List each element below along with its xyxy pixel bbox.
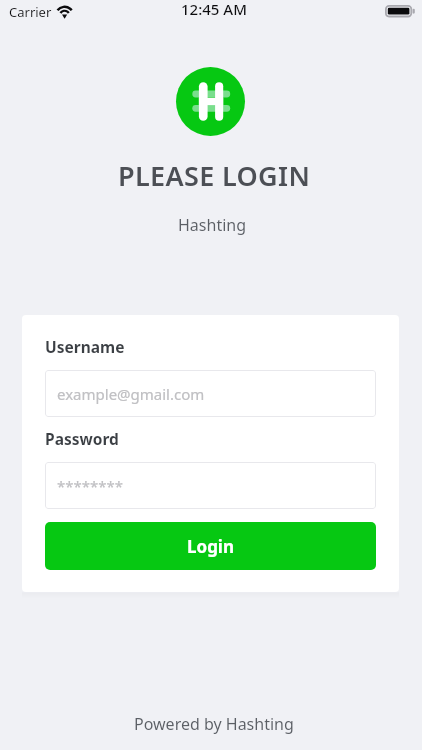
staticText: Carrier bbox=[9, 3, 52, 21]
button[interactable]: Password field bbox=[45, 462, 376, 509]
staticText: Password bbox=[45, 428, 119, 449]
other: Battery full bbox=[385, 5, 417, 19]
button[interactable]: Username field bbox=[45, 370, 376, 417]
staticText: example@gmail.com bbox=[57, 384, 205, 404]
staticText: Username bbox=[45, 336, 125, 357]
other: Hashting logo bbox=[176, 67, 245, 136]
staticText: ******** bbox=[57, 476, 124, 496]
other: Wi-Fi signal bbox=[56, 2, 75, 18]
staticText: Hashting bbox=[178, 214, 247, 236]
staticText: PLEASE LOGIN bbox=[118, 157, 311, 194]
staticText: Login bbox=[187, 535, 235, 558]
button[interactable]: Login bbox=[45, 522, 376, 570]
staticText: Powered by Hashting bbox=[134, 713, 294, 735]
staticText: 12:45 AM bbox=[181, 0, 247, 19]
